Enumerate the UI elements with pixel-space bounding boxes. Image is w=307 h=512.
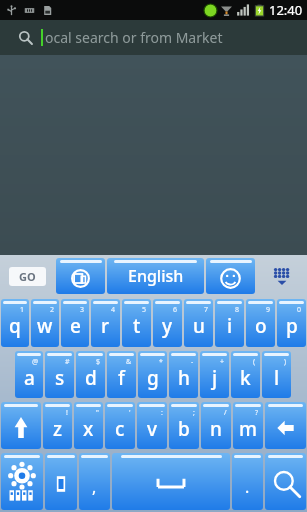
button[interactable]: * <box>138 351 167 398</box>
staticText: @ <box>32 357 39 367</box>
button[interactable]: ? <box>233 402 263 449</box>
staticText: 7 <box>204 305 209 315</box>
staticText: h <box>178 365 190 391</box>
staticText: " <box>96 408 99 418</box>
staticText: 6 <box>173 305 178 315</box>
button[interactable]: 8 <box>215 299 244 347</box>
staticText: 0 <box>297 305 302 315</box>
button[interactable]: + <box>200 351 229 398</box>
staticText: g <box>147 365 159 391</box>
staticText: a <box>24 365 35 391</box>
staticText: $ <box>96 357 101 367</box>
button[interactable]: 3 <box>61 299 89 347</box>
staticText: 5 <box>142 305 147 315</box>
button[interactable]: Backspace <box>265 402 306 449</box>
button[interactable]: @ <box>15 351 43 398</box>
button[interactable]: English <box>107 258 204 294</box>
staticText: ; <box>193 408 195 418</box>
button[interactable]: 5 <box>122 299 151 347</box>
staticText: o <box>255 313 267 339</box>
staticText: 9 <box>266 305 271 315</box>
button[interactable]: ! <box>43 402 72 449</box>
button[interactable]: ( <box>231 351 260 398</box>
staticText: c <box>115 416 125 442</box>
staticText: i <box>227 313 233 339</box>
staticText: u <box>193 313 205 339</box>
staticText: GO <box>19 269 36 284</box>
staticText: y <box>162 313 173 339</box>
staticText: ) <box>284 357 287 367</box>
staticText: 2 <box>50 305 55 315</box>
staticText: 4 <box>111 305 116 315</box>
button[interactable]: ' <box>105 402 135 449</box>
staticText: n <box>210 416 222 442</box>
staticText: d <box>85 365 97 391</box>
button[interactable]: Search <box>0 20 307 55</box>
staticText: ' <box>129 408 131 418</box>
button[interactable]: 4 <box>91 299 120 347</box>
staticText: x <box>83 416 94 442</box>
staticText: m <box>239 416 257 442</box>
button[interactable]: # <box>45 351 74 398</box>
button[interactable]: 6 <box>153 299 182 347</box>
staticText: / <box>224 408 227 418</box>
staticText: : <box>161 408 163 418</box>
button[interactable]: : <box>137 402 167 449</box>
staticText: ( <box>253 357 256 367</box>
staticText: b <box>178 416 190 442</box>
button[interactable]: Switch input <box>56 258 105 294</box>
button[interactable]: " <box>74 402 103 449</box>
staticText: e <box>70 313 81 339</box>
button[interactable]: 7 <box>184 299 213 347</box>
button[interactable]: Clipboard <box>45 453 77 510</box>
button[interactable]: ; <box>169 402 199 449</box>
staticText: 12:40 <box>269 1 303 19</box>
button[interactable]: ) <box>262 351 291 398</box>
staticText: , <box>92 476 97 498</box>
button[interactable]: Space <box>112 453 230 510</box>
staticText: l <box>274 365 280 391</box>
staticText: ! <box>66 408 68 418</box>
staticText: & <box>126 357 132 367</box>
staticText: f <box>118 365 125 391</box>
staticText: r <box>101 313 110 339</box>
staticText: s <box>55 365 65 391</box>
staticText: English <box>128 265 184 287</box>
button[interactable]: / <box>201 402 231 449</box>
button[interactable]: GO <box>0 255 55 297</box>
staticText: 3 <box>80 305 85 315</box>
staticText: - <box>191 357 194 367</box>
staticText: w <box>37 313 53 339</box>
staticText: q <box>9 313 21 339</box>
button[interactable]: 2 <box>31 299 59 347</box>
staticText: j <box>212 365 218 391</box>
staticText: ocal search or from Market <box>45 28 223 47</box>
staticText: + <box>220 357 225 367</box>
staticText: 1 <box>20 305 25 315</box>
button[interactable]: - <box>169 351 198 398</box>
button[interactable]: Shift <box>1 402 41 449</box>
staticText: 8 <box>235 305 240 315</box>
staticText: . <box>245 476 250 498</box>
other: Search <box>18 30 33 45</box>
button[interactable]: , <box>79 453 110 510</box>
staticText: z <box>53 416 63 442</box>
staticText: p <box>286 313 298 339</box>
button[interactable]: 0 <box>277 299 306 347</box>
button[interactable]: Emoji <box>206 258 255 294</box>
staticText: * <box>159 357 163 367</box>
button[interactable]: 1 <box>1 299 29 347</box>
button[interactable]: Hide keyboard <box>256 255 307 297</box>
staticText: k <box>240 365 251 391</box>
button[interactable]: $ <box>76 351 105 398</box>
button[interactable]: Symbols <box>1 453 43 510</box>
button[interactable]: 9 <box>246 299 275 347</box>
staticText: t <box>133 313 141 339</box>
button[interactable]: . <box>232 453 263 510</box>
button[interactable]: & <box>107 351 136 398</box>
button[interactable]: Search <box>265 453 306 510</box>
staticText: v <box>147 416 158 442</box>
staticText: ? <box>255 408 259 418</box>
staticText: # <box>65 357 70 367</box>
